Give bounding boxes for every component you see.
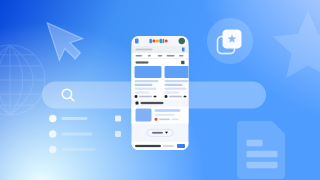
button[interactable]: Tab [144, 55, 155, 57]
button[interactable]: Video result [131, 106, 188, 123]
button[interactable]: More options [181, 61, 184, 64]
button[interactable]: Search [42, 81, 266, 108]
button[interactable]: Suggestion [49, 145, 121, 153]
button[interactable]: Tab [176, 55, 186, 57]
button[interactable]: Menu [135, 38, 138, 43]
button[interactable]: Tab [165, 55, 176, 57]
button[interactable]: Tab [133, 55, 144, 57]
button[interactable]: Search field [131, 46, 188, 53]
button[interactable]: Account [178, 38, 185, 44]
button[interactable]: Top story [164, 66, 191, 98]
button[interactable]: Suggestion [49, 114, 121, 122]
button[interactable]: Suggestion [49, 130, 121, 138]
button[interactable]: More results [147, 129, 173, 136]
button[interactable]: Top story [134, 66, 161, 98]
button[interactable]: Tab [155, 55, 165, 57]
